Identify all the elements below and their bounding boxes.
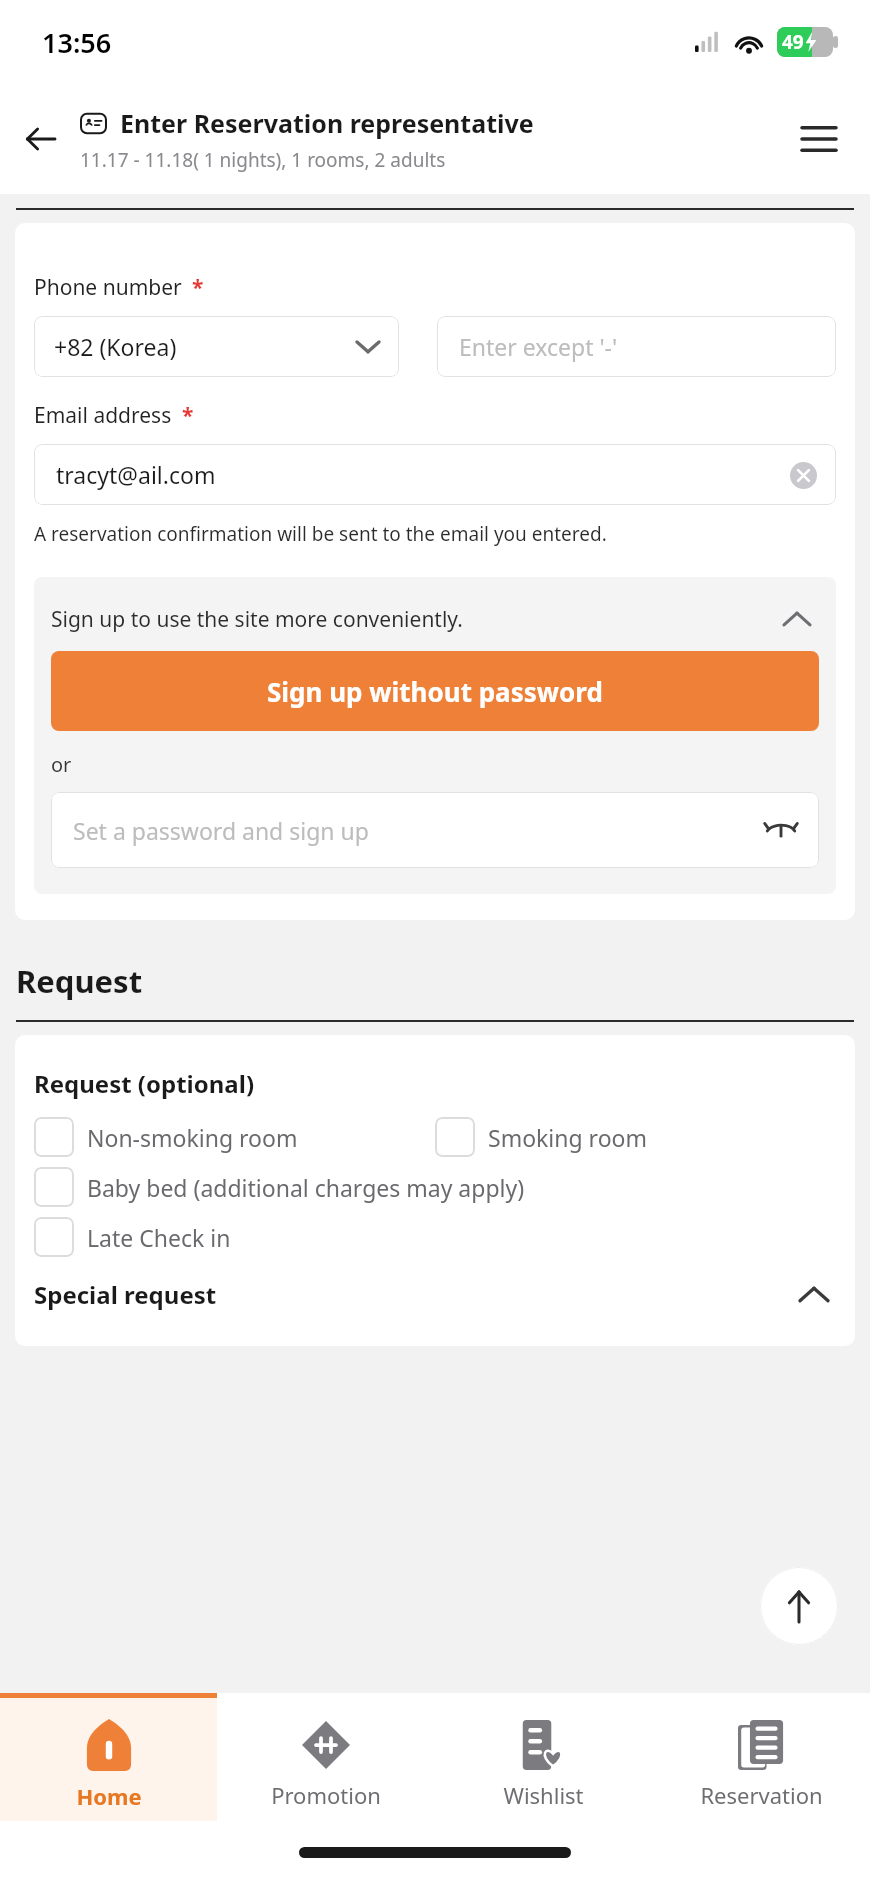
- staticText: Enter Reservation representative: [120, 106, 534, 140]
- button[interactable]: Reservation: [652, 1693, 870, 1821]
- staticText: Home: [76, 1781, 142, 1811]
- staticText: Non-smoking room: [87, 1122, 298, 1153]
- button[interactable]: Baby bed (additional charges may apply): [34, 1167, 525, 1207]
- staticText: Wishlist: [503, 1780, 584, 1810]
- staticText: 49: [782, 29, 804, 55]
- button[interactable]: Special request: [34, 1272, 836, 1316]
- staticText: *: [192, 273, 204, 302]
- staticText: Late Check in: [87, 1222, 231, 1253]
- button[interactable]: Wishlist: [434, 1693, 652, 1821]
- button[interactable]: Smoking room: [435, 1117, 836, 1157]
- staticText: 13:56: [42, 24, 112, 61]
- staticText: Smoking room: [488, 1122, 647, 1153]
- staticText: Sign up to use the site more convenientl…: [51, 605, 775, 634]
- staticText: Reservation: [700, 1780, 823, 1810]
- staticText: Phone number: [34, 273, 182, 302]
- button[interactable]: +82 (Korea): [34, 316, 399, 377]
- staticText: Set a password and sign up: [73, 815, 369, 846]
- button[interactable]: Collapse: [775, 597, 819, 641]
- button[interactable]: Menu: [790, 110, 848, 168]
- staticText: Request (optional): [34, 1067, 255, 1100]
- staticText: or: [51, 751, 72, 778]
- button[interactable]: tracyt@ail.com: [34, 444, 836, 505]
- button[interactable]: Non-smoking room: [34, 1117, 435, 1157]
- staticText: A reservation confirmation will be sent …: [34, 521, 607, 547]
- staticText: Email address: [34, 401, 172, 430]
- staticText: Special request: [34, 1278, 792, 1311]
- staticText: Baby bed (additional charges may apply): [87, 1172, 525, 1203]
- button[interactable]: Late Check in: [34, 1217, 231, 1257]
- staticText: +82 (Korea): [54, 331, 177, 362]
- button[interactable]: Clear email: [786, 458, 820, 492]
- button[interactable]: Back: [12, 111, 68, 167]
- button[interactable]: Promotion: [217, 1693, 434, 1821]
- button[interactable]: Set a password and sign up: [51, 792, 819, 868]
- staticText: 11.17 - 11.18( 1 nights), 1 rooms, 2 adu…: [80, 147, 446, 173]
- staticText: tracyt@ail.com: [56, 459, 216, 490]
- button[interactable]: Home: [0, 1693, 217, 1821]
- button[interactable]: Enter except '-': [437, 316, 836, 377]
- staticText: *: [182, 401, 194, 430]
- staticText: Promotion: [271, 1780, 381, 1810]
- staticText: Enter except '-': [459, 331, 618, 362]
- staticText: Sign up without password: [267, 674, 603, 709]
- staticText: Request: [16, 960, 143, 1002]
- button[interactable]: Show password: [761, 810, 801, 850]
- button[interactable]: Scroll to top: [760, 1567, 838, 1645]
- button[interactable]: Sign up without password: [51, 651, 819, 731]
